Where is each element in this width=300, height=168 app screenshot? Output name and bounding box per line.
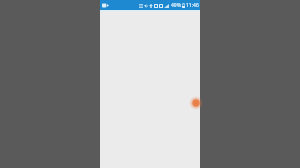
button[interactable]: Action — [189, 96, 203, 110]
staticText: 49% — [171, 2, 181, 9]
staticText: 11:46 — [186, 2, 199, 9]
